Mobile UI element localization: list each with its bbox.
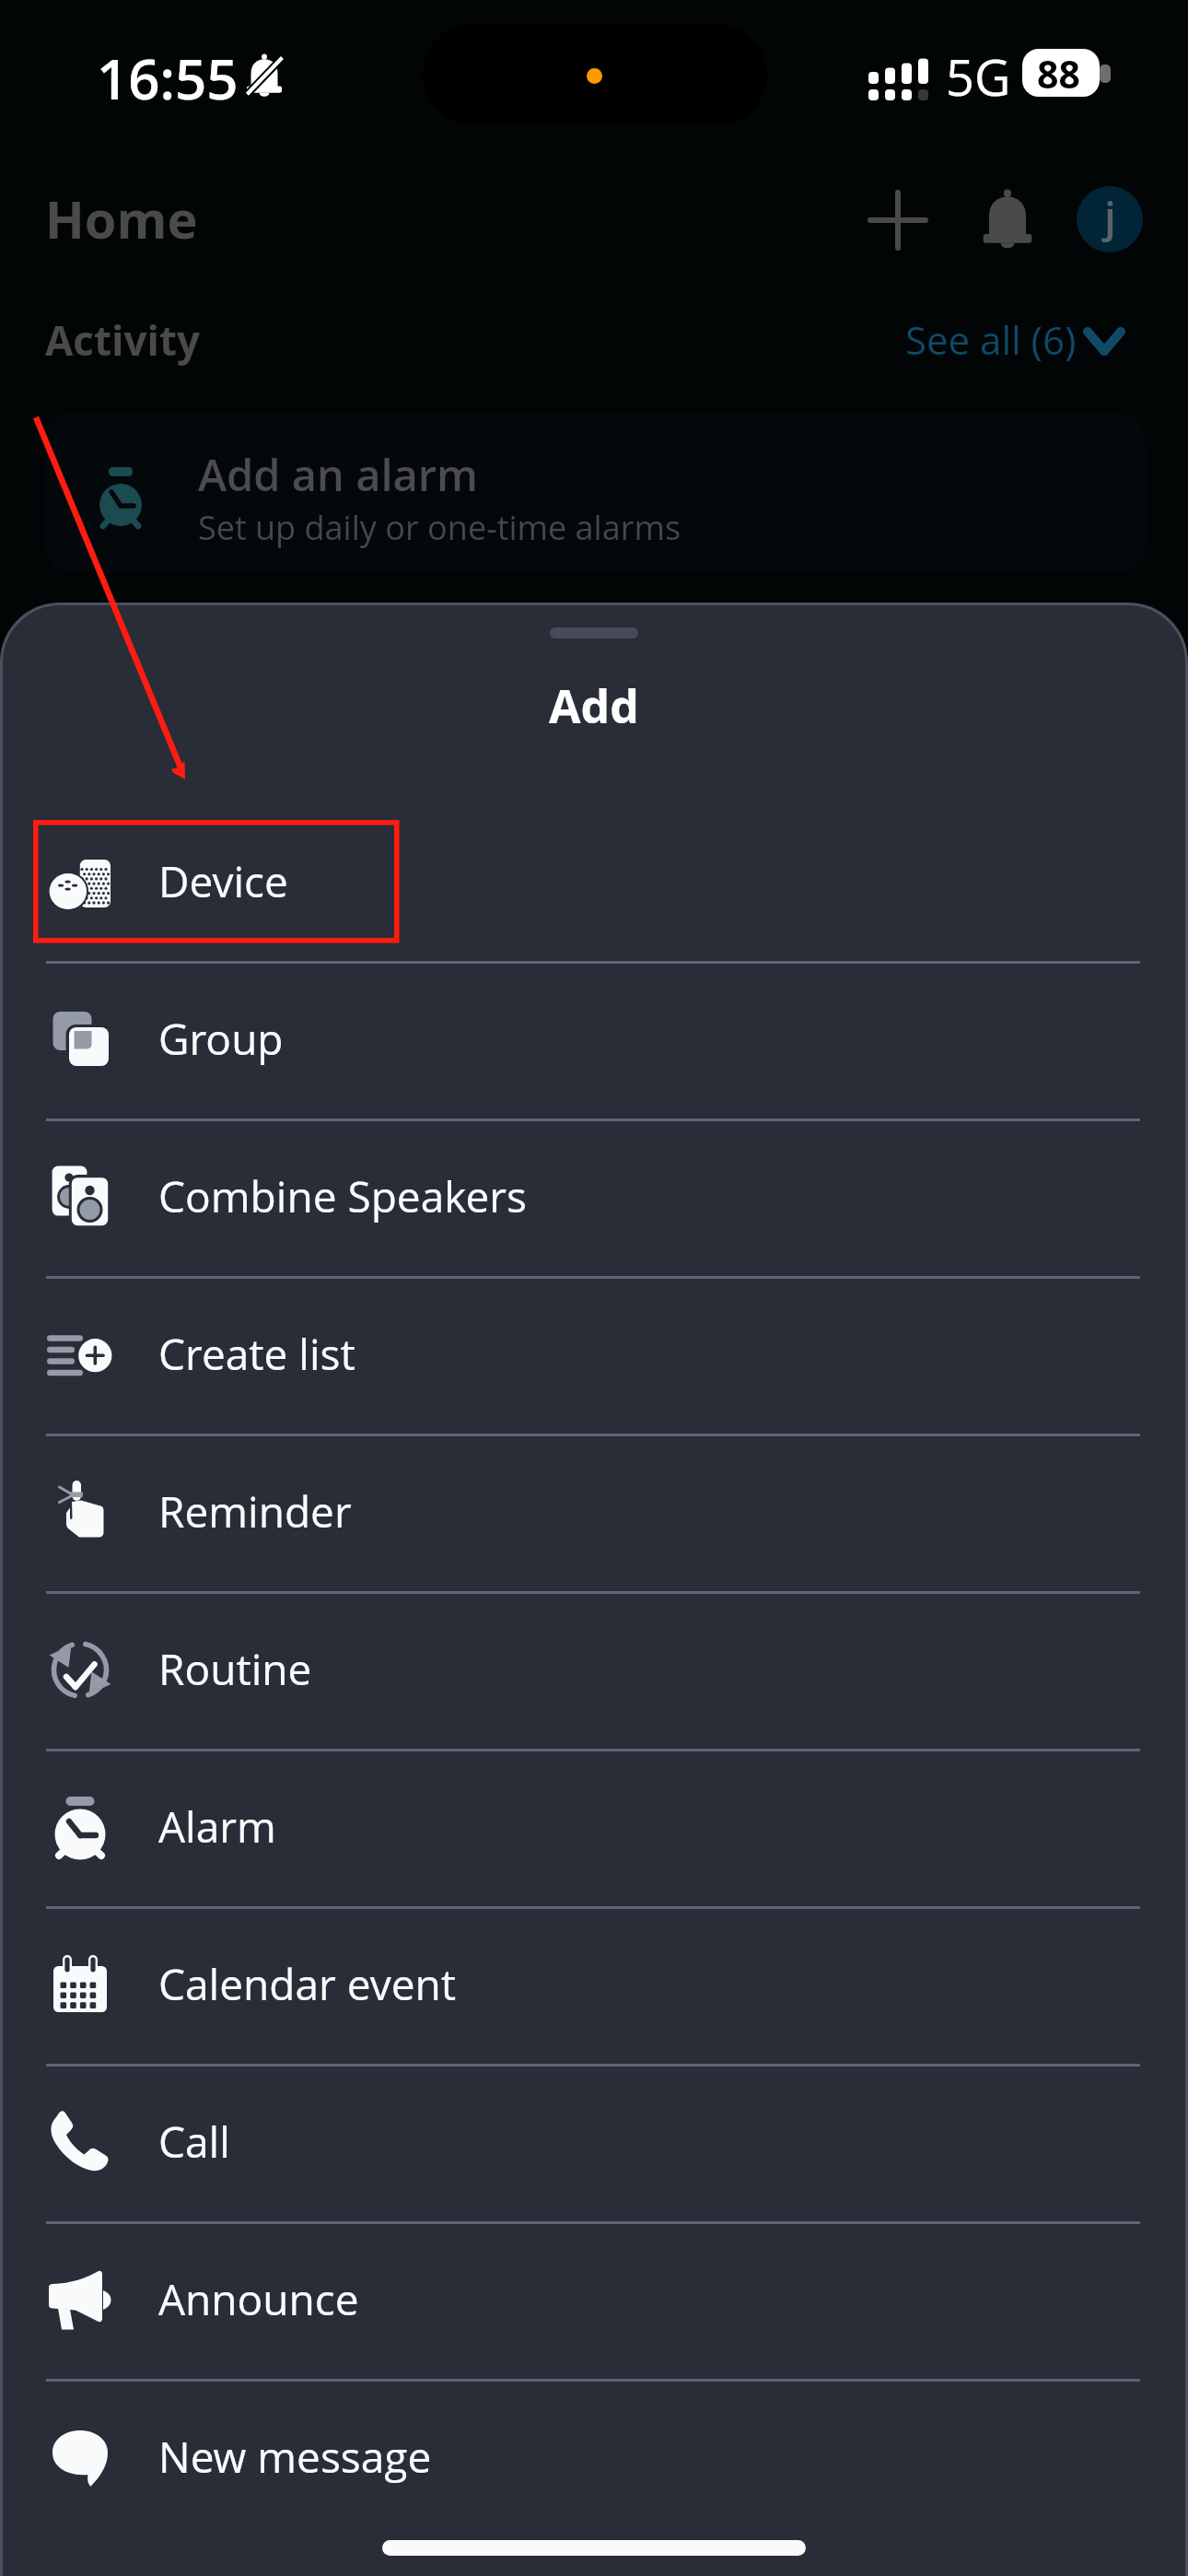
staticText: Home [45,183,198,253]
staticText: Calendar event [158,1955,456,2013]
staticText: Create list [158,1325,355,1383]
button[interactable]: Calendar event [0,1905,1188,2063]
button[interactable]: Create list [0,1275,1188,1433]
staticText: See all (6) [905,313,1077,366]
staticText: Add [549,674,639,737]
button[interactable]: Add [861,183,935,257]
staticText: 16:55 [97,41,239,116]
staticText: Reminder [158,1482,352,1540]
staticText: j [1104,187,1116,245]
staticText: Activity [45,312,201,368]
staticText: Announce [158,2270,359,2328]
button[interactable]: Add an alarm [44,414,1146,573]
staticText: Add an alarm [198,445,478,504]
staticText: Routine [158,1640,312,1698]
button[interactable]: Profile [1077,186,1143,252]
staticText: New message [158,2428,432,2486]
button[interactable]: Group [0,960,1188,1118]
staticText: Group [158,1010,284,1068]
staticText: Device [158,852,288,910]
button[interactable]: Combine Speakers [0,1118,1188,1275]
staticText: Combine Speakers [158,1167,527,1225]
button[interactable]: Announce [0,2220,1188,2378]
staticText: Alarm [158,1797,276,1856]
button[interactable]: New message [0,2378,1188,2535]
staticText: Set up daily or one-time alarms [198,505,681,550]
button[interactable]: Reminder [0,1433,1188,1590]
staticText: 5G [946,42,1011,111]
button[interactable]: Device [0,802,1188,960]
button[interactable]: Notifications [971,182,1044,256]
button[interactable]: Alarm [0,1748,1188,1905]
button[interactable]: See all activity [905,313,1128,366]
staticText: Call [158,2113,230,2171]
button[interactable]: Call [0,2063,1188,2220]
staticText: 88 [1037,49,1080,96]
button[interactable]: Routine [0,1590,1188,1748]
